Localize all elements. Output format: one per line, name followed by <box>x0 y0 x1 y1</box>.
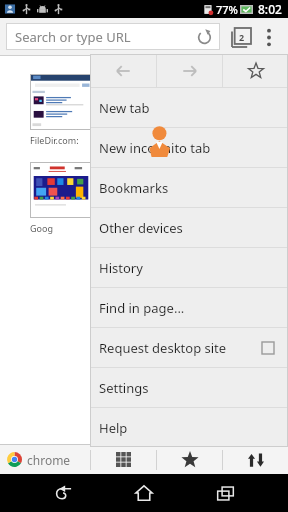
button[interactable]: Back <box>90 54 156 87</box>
button[interactable]: Bookmarks <box>90 168 288 207</box>
button[interactable]: Reload <box>191 24 217 50</box>
button[interactable]: History <box>90 248 288 287</box>
button[interactable]: Transfers <box>223 445 288 474</box>
staticText: 77% <box>216 2 238 17</box>
staticText: Find in page... <box>99 299 288 317</box>
staticText: FileDir.com: <box>30 134 81 146</box>
staticText: Search or type URL <box>15 28 191 46</box>
staticText: 8:02 <box>258 1 282 17</box>
staticText: New tab <box>99 99 288 117</box>
button[interactable]: Home <box>127 476 161 510</box>
button[interactable]: Recent apps <box>208 476 242 510</box>
button[interactable]: Back <box>46 476 80 510</box>
button[interactable]: More options <box>256 22 282 52</box>
button[interactable]: Tabs: 2 <box>226 22 256 52</box>
button[interactable]: Find in page... <box>90 288 288 327</box>
staticText: New incognito tab <box>99 139 288 157</box>
staticText: History <box>99 259 288 277</box>
button[interactable]: chrome <box>0 445 90 474</box>
button[interactable]: Google thumbnail <box>30 162 92 218</box>
staticText: Bookmarks <box>99 179 288 197</box>
staticText: Help <box>99 419 288 437</box>
staticText: Settings <box>99 379 288 397</box>
button[interactable]: Apps <box>91 445 156 474</box>
button[interactable]: Help <box>90 408 288 447</box>
button[interactable]: Other devices <box>90 208 288 247</box>
staticText: Request desktop site <box>99 339 262 357</box>
button[interactable]: New incognito tab <box>90 128 288 167</box>
button[interactable]: Settings <box>90 368 288 407</box>
staticText: 2 <box>239 31 245 43</box>
button[interactable]: New tab <box>90 88 288 127</box>
button[interactable]: Forward <box>157 54 222 87</box>
button[interactable]: Request desktop site <box>90 328 288 367</box>
button[interactable]: FileDir.com thumbnail <box>30 74 92 130</box>
button[interactable]: Search or type URL <box>6 23 220 50</box>
staticText: Other devices <box>99 219 288 237</box>
staticText: Goog <box>30 222 53 234</box>
button[interactable]: Bookmark this page <box>223 54 288 87</box>
staticText: chrome <box>27 452 71 468</box>
button[interactable]: Bookmarks <box>157 445 222 474</box>
